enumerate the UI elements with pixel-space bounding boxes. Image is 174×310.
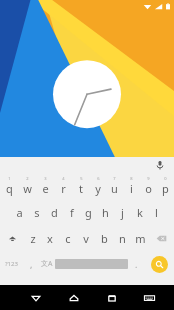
staticText: v [83,231,89,246]
button[interactable]: g [80,199,97,225]
button[interactable]: b [95,225,113,251]
button[interactable]: Voice input [154,159,166,171]
staticText: p [162,181,169,196]
staticText: i [130,181,133,196]
button[interactable]: f [63,199,80,225]
button[interactable]: s [28,199,46,225]
button[interactable]: Home [61,285,86,310]
button[interactable]: Recent apps [99,285,124,310]
button[interactable]: x [41,225,59,251]
staticText: g [85,205,92,220]
staticText: k [137,205,143,220]
button[interactable]: 4 [54,173,72,199]
button[interactable]: c [59,225,77,251]
button[interactable]: h [97,199,114,225]
button[interactable]: 6 [89,173,106,199]
staticText: 2 [26,176,29,181]
staticText: o [145,181,152,196]
staticText: 3 [44,176,47,181]
button[interactable]: j [114,199,131,225]
staticText: f [70,205,74,220]
staticText: b [101,231,108,246]
button[interactable]: Search [151,256,168,273]
button[interactable]: 1 [0,173,18,199]
staticText: 6 [97,176,100,181]
button[interactable]: 5 [72,173,89,199]
staticText: m [135,231,146,246]
staticText: z [30,231,36,246]
button[interactable]: v [77,225,95,251]
button[interactable]: 7 [106,173,123,199]
staticText: n [119,231,126,246]
staticText: ?123 [5,260,18,268]
button[interactable]: Change language [39,251,55,277]
button[interactable]: Shift [0,225,24,251]
staticText: a [16,205,23,220]
staticText: 文A [41,259,53,269]
staticText: h [102,205,109,220]
button[interactable]: z [24,225,41,251]
staticText: s [34,205,40,220]
staticText: 4 [62,176,65,181]
button[interactable]: n [113,225,131,251]
button[interactable]: 2 [18,173,36,199]
button[interactable]: 0 [157,173,174,199]
staticText: t [79,181,83,196]
button[interactable]: Switch keyboard [137,285,162,310]
staticText: . [135,258,138,270]
staticText: , [30,258,33,270]
button[interactable]: l [148,199,165,225]
button[interactable]: 8 [123,173,140,199]
staticText: l [155,205,158,220]
staticText: j [121,205,124,220]
staticText: u [111,181,118,196]
staticText: e [42,181,49,196]
staticText: d [51,205,58,220]
button[interactable]: , [23,251,39,277]
button[interactable]: Backspace [149,225,174,251]
staticText: 8 [130,176,133,181]
staticText: 1 [8,176,11,181]
button[interactable]: k [131,199,148,225]
button[interactable]: ?123 [0,251,23,277]
button[interactable]: Back [23,285,48,310]
button[interactable]: a [10,199,28,225]
staticText: 0 [164,176,167,181]
button[interactable]: 3 [36,173,54,199]
staticText: y [95,181,101,196]
staticText: r [61,181,66,196]
staticText: 9 [147,176,150,181]
staticText: w [23,181,32,196]
staticText: q [6,181,13,196]
button[interactable]: 9 [140,173,157,199]
button[interactable]: m [131,225,149,251]
staticText: x [47,231,53,246]
button[interactable]: d [46,199,63,225]
staticText: c [65,231,71,246]
staticText: 5 [80,176,83,181]
staticText: 7 [113,176,116,181]
